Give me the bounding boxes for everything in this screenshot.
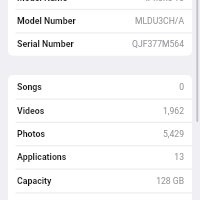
- staticText: QJF377M564: [132, 39, 184, 49]
- staticText: 13: [174, 152, 184, 162]
- staticText: Videos: [17, 106, 45, 116]
- staticText: 5,429: [162, 129, 184, 139]
- button[interactable]: Capacity: [8, 169, 192, 193]
- button[interactable]: Songs: [8, 75, 192, 99]
- staticText: 1,962: [162, 106, 184, 116]
- staticText: Serial Number: [17, 39, 74, 49]
- staticText: 0: [179, 82, 184, 92]
- button[interactable]: Model Name: [8, 0, 192, 10]
- staticText: iPhone 13: [145, 0, 184, 3]
- staticText: MLDU3CH/A: [134, 16, 184, 26]
- button[interactable]: Videos: [8, 99, 192, 122]
- staticText: Songs: [17, 82, 42, 92]
- button[interactable]: Serial Number: [8, 32, 192, 56]
- staticText: Model Name: [17, 0, 68, 3]
- staticText: Photos: [17, 129, 45, 139]
- staticText: Model Number: [17, 16, 76, 26]
- button[interactable]: Applications: [8, 145, 192, 168]
- staticText: Applications: [17, 152, 67, 162]
- staticText: 128 GB: [156, 176, 184, 186]
- staticText: Capacity: [17, 176, 52, 186]
- button[interactable]: Photos: [8, 122, 192, 145]
- button[interactable]: Model Number: [8, 9, 192, 33]
- other: Scroll position: [194, 0, 200, 122]
- button[interactable]: Available: [8, 192, 192, 200]
